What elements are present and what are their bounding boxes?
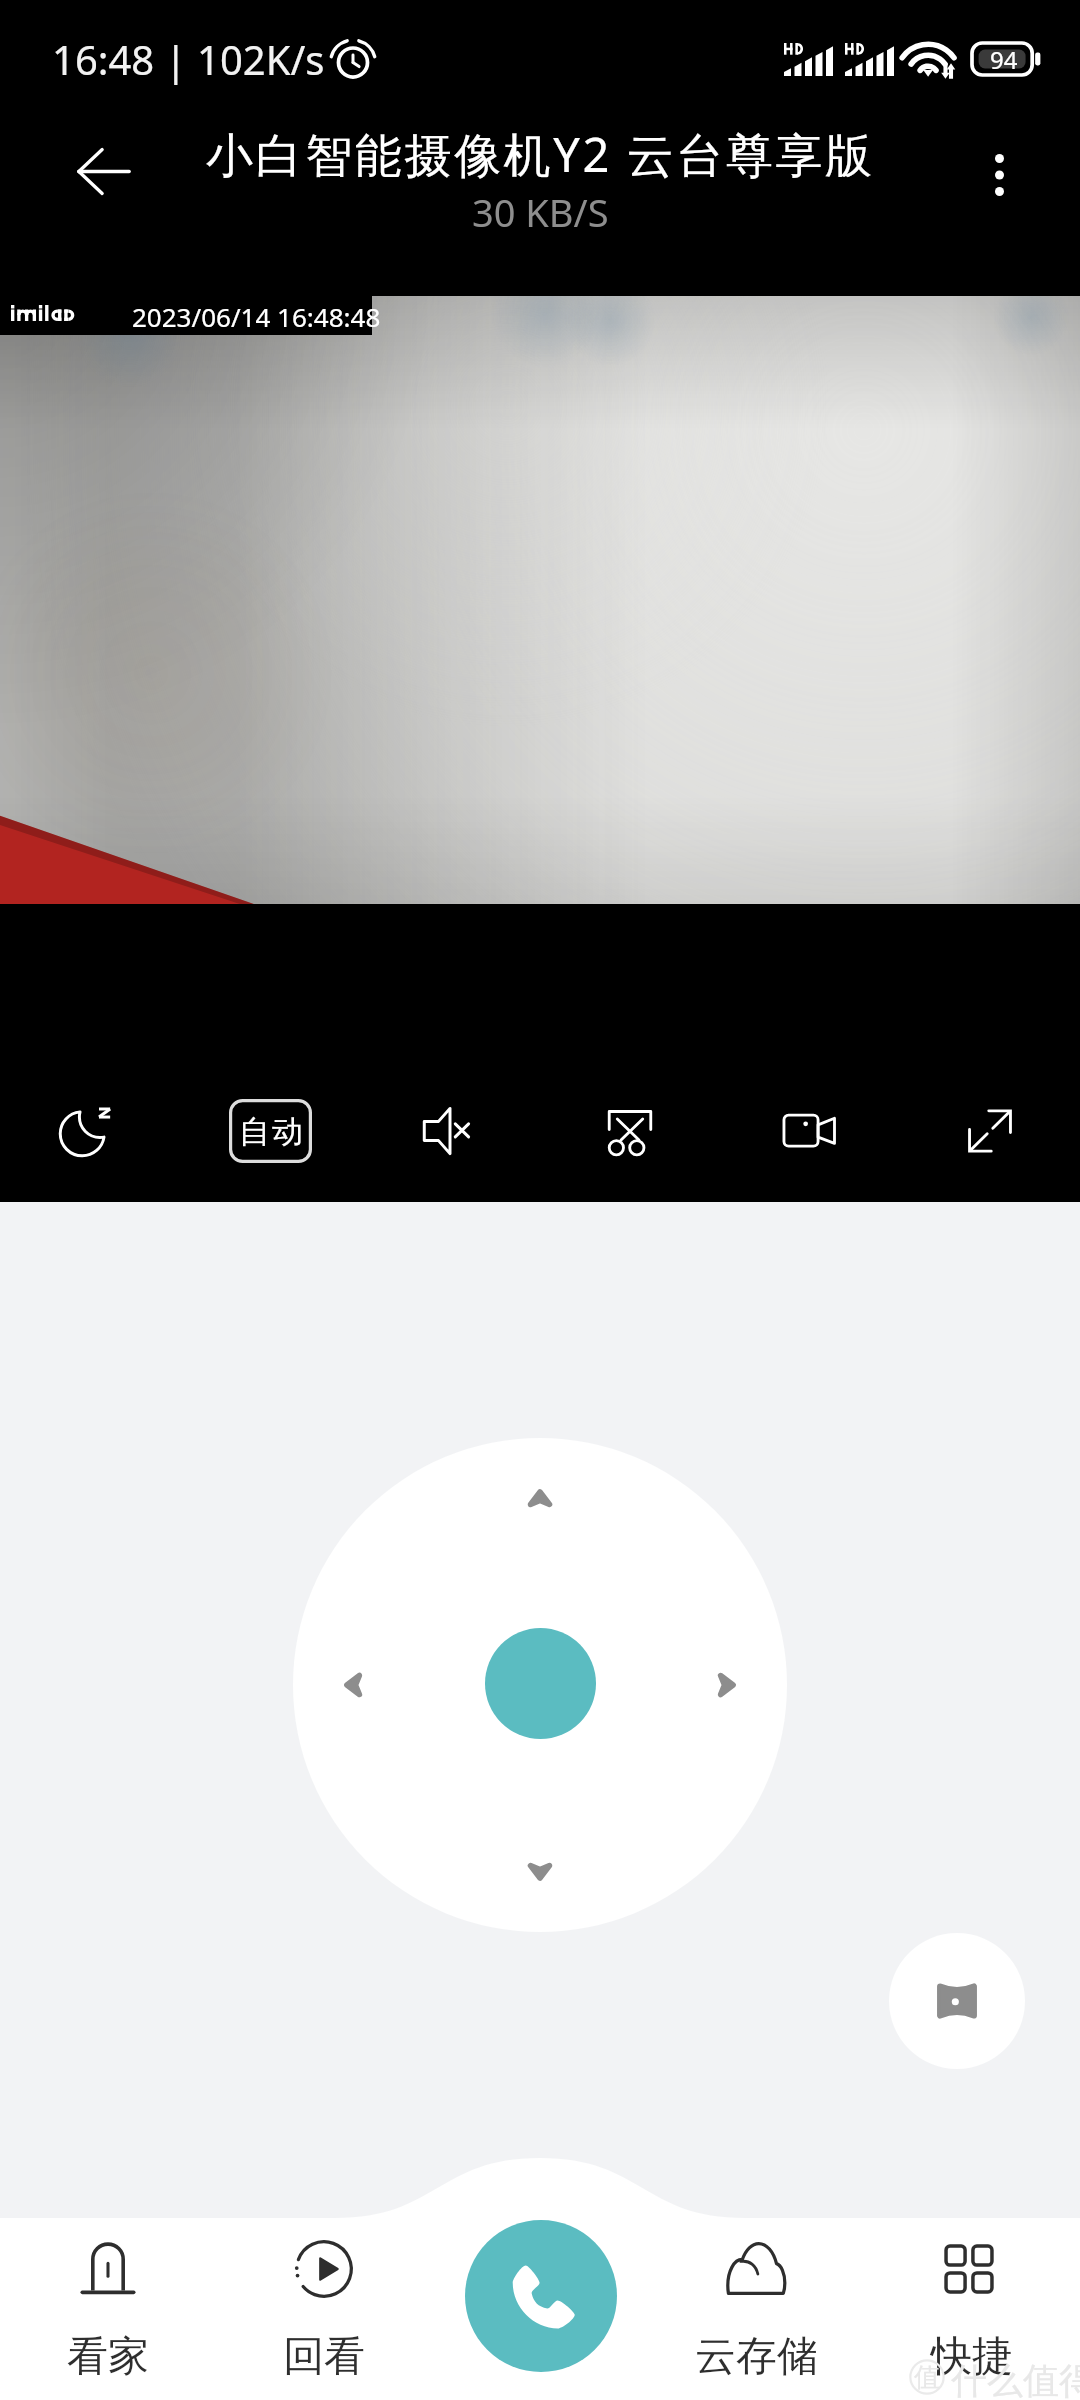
staticText: 看家	[67, 2331, 149, 2383]
button[interactable]: Mute	[360, 1075, 540, 1187]
button[interactable]: 自动	[180, 1075, 360, 1187]
button[interactable]: Two-way talk	[465, 2220, 617, 2372]
button[interactable]: Panorama	[889, 1933, 1025, 2069]
button[interactable]: Recenter camera	[485, 1628, 596, 1739]
button[interactable]: Snapshot	[540, 1075, 720, 1187]
staticText: 94	[990, 43, 1018, 75]
staticText: 30 KB/S	[472, 186, 609, 238]
button[interactable]: Pan tilt control	[293, 1438, 787, 1932]
staticText: 云存储	[695, 2331, 818, 2383]
staticText: 2023/06/14 16:48:48	[132, 299, 381, 334]
staticText: 什么值得买	[951, 2358, 1080, 2400]
button[interactable]: Night mode	[0, 1075, 180, 1187]
button[interactable]: 回看	[216, 2152, 432, 2400]
button[interactable]: 看家	[0, 2152, 216, 2400]
staticText: 快捷	[931, 2331, 1013, 2383]
button[interactable]: Full screen	[900, 1075, 1080, 1187]
button[interactable]: Back	[46, 116, 156, 226]
button[interactable]: More options	[946, 122, 1052, 228]
staticText: 小白智能摄像机Y2 云台尊享版	[206, 122, 875, 186]
button[interactable]: 快捷	[864, 2152, 1080, 2400]
staticText: 自动	[238, 1112, 304, 1151]
button[interactable]: 云存储	[648, 2152, 864, 2400]
staticText: 值	[914, 2361, 940, 2394]
button[interactable]: Record video	[720, 1075, 900, 1187]
staticText: 回看	[283, 2331, 365, 2383]
staticText: 16:48 | 102K/s	[52, 32, 325, 86]
